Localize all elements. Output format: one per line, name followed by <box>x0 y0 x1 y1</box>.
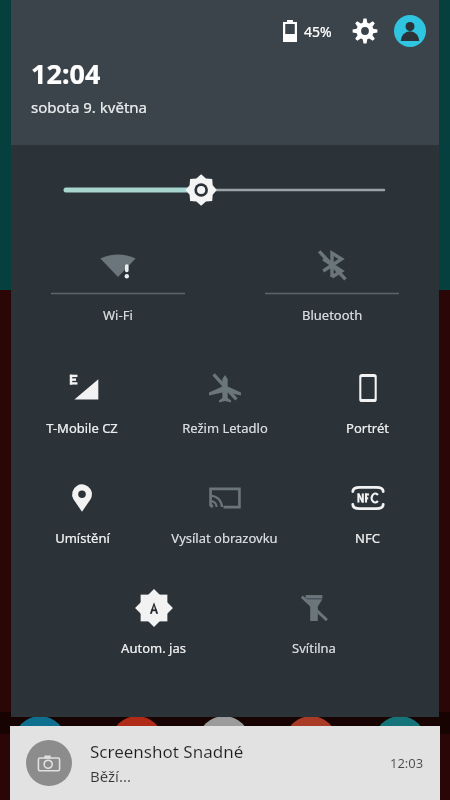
staticText: Autom. jas <box>121 639 186 657</box>
staticText: 12:04 <box>31 55 101 92</box>
button[interactable]: Brightness <box>11 145 439 235</box>
staticText: Běží... <box>90 766 132 786</box>
button[interactable]: Screenshot Snadné <box>10 726 440 800</box>
staticText: Umístění <box>55 529 110 547</box>
staticText: Screenshot Snadné <box>90 740 244 763</box>
staticText: T-Mobile CZ <box>46 419 118 437</box>
staticText: Wi-Fi <box>103 306 133 324</box>
button[interactable]: Režim Letadlo <box>153 355 296 465</box>
staticText: Režim Letadlo <box>182 419 268 437</box>
button[interactable]: NFC <box>296 465 439 575</box>
button[interactable]: Portrét <box>296 355 439 465</box>
button[interactable]: Settings <box>349 15 381 47</box>
staticText: Portrét <box>346 419 389 437</box>
staticText: 12:03 <box>390 754 424 772</box>
button[interactable]: Vysílat obrazovku <box>153 465 296 575</box>
button[interactable]: Svítilna <box>242 575 385 685</box>
button[interactable]: User profile <box>393 14 427 48</box>
button[interactable]: Wi-Fi <box>11 235 225 355</box>
staticText: NFC <box>355 529 380 547</box>
staticText: Svítilna <box>292 639 336 657</box>
staticText: 45% <box>304 22 332 41</box>
staticText: Vysílat obrazovku <box>171 529 278 547</box>
button[interactable]: Umístění <box>11 465 153 575</box>
button[interactable]: T-Mobile CZ <box>11 355 153 465</box>
staticText: Bluetooth <box>302 306 363 324</box>
staticText: sobota 9. května <box>31 97 147 117</box>
button[interactable]: Autom. jas <box>82 575 225 685</box>
button[interactable]: Bluetooth <box>225 235 439 355</box>
